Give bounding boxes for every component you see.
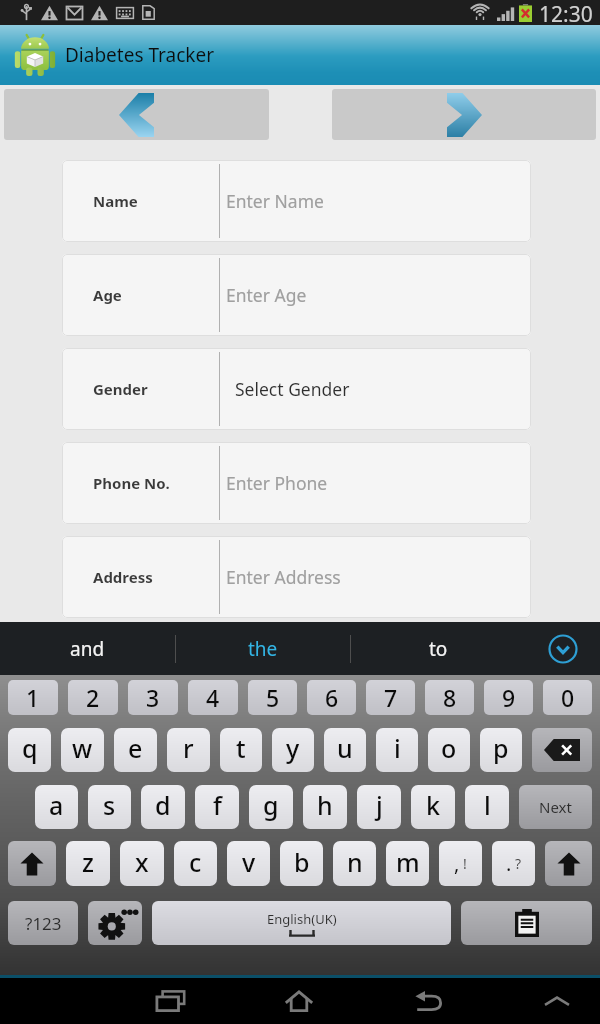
button[interactable]: 8 [425, 680, 474, 715]
button[interactable]: to [351, 622, 525, 675]
staticText: k [426, 788, 440, 822]
staticText: e [128, 731, 143, 765]
button[interactable]: Phone No. [62, 442, 531, 524]
staticText: g [263, 788, 279, 822]
button[interactable]: 9 [484, 680, 533, 715]
staticText: n [347, 845, 363, 879]
staticText: ?123 [25, 912, 62, 935]
button[interactable]: Shift [8, 841, 56, 886]
staticText: b [294, 845, 310, 879]
staticText: Age [93, 285, 122, 305]
button[interactable]: Name [62, 160, 531, 242]
staticText: 6 [325, 682, 339, 713]
button[interactable]: q [8, 728, 51, 772]
button[interactable]: 1 [8, 680, 58, 715]
staticText: 2 [86, 682, 100, 713]
staticText: . [506, 850, 512, 877]
staticText: d [155, 788, 171, 822]
button[interactable]: Previous [4, 89, 269, 140]
staticText: 5 [266, 682, 280, 713]
staticText: u [337, 731, 353, 765]
button[interactable]: Settings [88, 901, 142, 945]
other: Clipboard [515, 909, 539, 937]
staticText: o [441, 731, 457, 765]
button[interactable]: y [272, 728, 314, 772]
button[interactable]: Gender [62, 348, 531, 430]
button[interactable]: a [35, 785, 78, 829]
button[interactable]: o [428, 728, 470, 772]
staticText: Enter Age [226, 283, 307, 307]
button[interactable]: i [376, 728, 418, 772]
button[interactable]: d [141, 785, 185, 829]
button[interactable]: x [120, 841, 164, 886]
button[interactable]: z [66, 841, 110, 886]
button[interactable]: Address [62, 536, 531, 618]
button[interactable]: and [0, 622, 175, 675]
other: Shift [20, 851, 44, 877]
button[interactable]: b [280, 841, 323, 886]
button[interactable]: e [114, 728, 157, 772]
staticText: v [242, 845, 256, 879]
button[interactable]: 7 [366, 680, 415, 715]
button[interactable]: Next [519, 785, 592, 829]
button[interactable]: Age [62, 254, 531, 336]
button[interactable]: j [357, 785, 401, 829]
other: Backspace [544, 738, 580, 762]
button[interactable]: k [411, 785, 455, 829]
button[interactable]: Space [152, 901, 451, 945]
staticText: Diabetes Tracker [65, 42, 215, 68]
staticText: c [189, 845, 202, 879]
button[interactable]: g [249, 785, 293, 829]
button[interactable]: f [195, 785, 239, 829]
button[interactable]: Home [269, 978, 329, 1024]
button[interactable]: Backspace [532, 728, 592, 772]
button[interactable]: v [227, 841, 270, 886]
button[interactable]: 2 [68, 680, 118, 715]
staticText: Enter Address [226, 565, 341, 589]
button[interactable]: l [465, 785, 509, 829]
button[interactable]: 3 [128, 680, 178, 715]
button[interactable]: 5 [248, 680, 297, 715]
staticText: y [286, 731, 300, 765]
button[interactable]: , [439, 841, 482, 886]
button[interactable]: p [480, 728, 522, 772]
staticText: and [70, 636, 105, 662]
other: Shift [557, 851, 581, 877]
button[interactable]: 6 [307, 680, 356, 715]
staticText: 1 [26, 682, 40, 713]
button[interactable]: Next [332, 89, 596, 140]
button[interactable]: Clipboard [461, 901, 592, 945]
button[interactable]: s [88, 785, 131, 829]
staticText: m [396, 845, 420, 879]
staticText: z [82, 845, 94, 879]
button[interactable]: ?123 [8, 901, 78, 945]
button[interactable]: u [324, 728, 366, 772]
staticText: the [248, 636, 278, 662]
staticText: to [429, 636, 448, 662]
button[interactable]: h [303, 785, 347, 829]
button[interactable]: Menu [527, 978, 587, 1024]
staticText: l [484, 788, 491, 822]
button[interactable]: m [386, 841, 429, 886]
staticText: q [22, 731, 38, 765]
button[interactable]: t [220, 728, 262, 772]
staticText: Phone No. [93, 473, 170, 493]
staticText: 4 [206, 682, 220, 713]
button[interactable]: 4 [188, 680, 238, 715]
button[interactable]: c [174, 841, 217, 886]
staticText: 7 [384, 682, 398, 713]
staticText: Enter Phone [226, 471, 328, 495]
button[interactable]: r [167, 728, 210, 772]
button[interactable]: n [333, 841, 376, 886]
button[interactable]: . [492, 841, 535, 886]
staticText: Gender [93, 379, 148, 399]
button[interactable]: Hide keyboard [525, 622, 600, 675]
button[interactable]: Shift [545, 841, 592, 886]
staticText: h [317, 788, 333, 822]
button[interactable]: w [61, 728, 104, 772]
button[interactable]: the [176, 622, 350, 675]
staticText: x [135, 845, 149, 879]
button[interactable]: 0 [543, 680, 592, 715]
button[interactable]: Back [398, 978, 458, 1024]
button[interactable]: Recents [141, 978, 201, 1024]
